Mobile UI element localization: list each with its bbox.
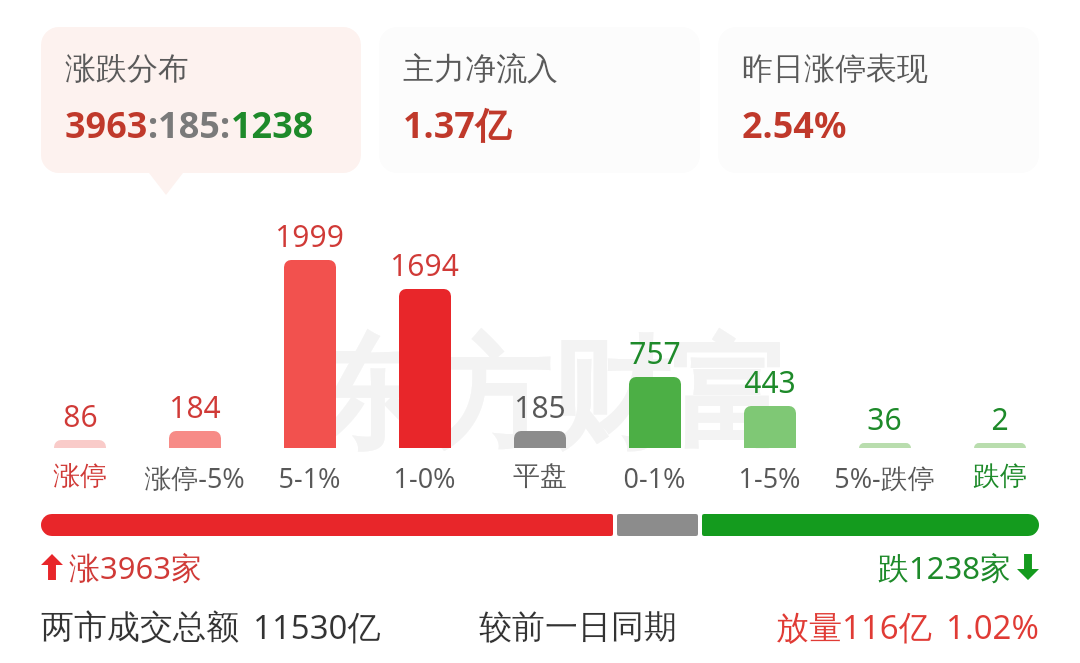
staticText: 涨跌分布 xyxy=(65,49,189,88)
staticText: 5-1% xyxy=(278,459,341,492)
other: Rising xyxy=(41,554,63,580)
staticText: :185: xyxy=(148,100,231,149)
button[interactable]: 2 xyxy=(942,212,1057,492)
staticText: 1999 xyxy=(275,215,344,256)
staticText: 3963 xyxy=(65,100,148,149)
button[interactable]: 185 xyxy=(482,212,597,492)
staticText: 757 xyxy=(629,332,681,373)
staticText: 跌停 xyxy=(973,459,1027,492)
staticText: 放量116亿 xyxy=(776,604,932,649)
staticText: 11530亿 xyxy=(253,604,381,649)
button[interactable]: 757 xyxy=(597,212,712,492)
staticText: 跌1238家 xyxy=(878,546,1011,588)
staticText: 主力净流入 xyxy=(403,49,558,88)
button[interactable]: 涨跌分布 xyxy=(41,27,361,173)
staticText: 1.02% xyxy=(946,604,1039,649)
staticText: 1238 xyxy=(231,100,314,149)
staticText: 平盘 xyxy=(513,459,567,492)
staticText: 1.37亿 xyxy=(403,100,511,149)
button[interactable]: 1999 xyxy=(252,212,367,492)
staticText: 36 xyxy=(867,398,902,439)
button[interactable]: 主力净流入 xyxy=(379,27,700,173)
button[interactable]: 86 xyxy=(23,212,137,492)
other: Falling xyxy=(1017,554,1039,580)
staticText: 5%-跌停 xyxy=(834,459,935,492)
staticText: 86 xyxy=(63,395,98,436)
staticText: 0-1% xyxy=(623,459,686,492)
staticText: 涨停 xyxy=(53,459,107,492)
staticText: 两市成交总额 xyxy=(41,606,239,648)
staticText: 涨停-5% xyxy=(144,459,245,492)
button[interactable]: 184 xyxy=(137,212,252,492)
staticText: 2 xyxy=(991,398,1009,439)
staticText: 184 xyxy=(169,386,221,427)
button[interactable]: 1694 xyxy=(367,212,482,492)
button[interactable]: 443 xyxy=(712,212,827,492)
staticText: 较前一日同期 xyxy=(479,606,677,648)
button[interactable]: 36 xyxy=(827,212,942,492)
staticText: 443 xyxy=(744,361,796,402)
staticText: 东方财富 xyxy=(310,320,790,471)
button[interactable]: 昨日涨停表现 xyxy=(718,27,1039,173)
staticText: 涨3963家 xyxy=(69,546,202,588)
staticText: 2.54% xyxy=(742,100,847,149)
staticText: 1694 xyxy=(390,244,459,285)
staticText: 1-5% xyxy=(738,459,801,492)
staticText: 昨日涨停表现 xyxy=(742,49,928,88)
staticText: 185 xyxy=(514,386,566,427)
staticText: 1-0% xyxy=(393,459,456,492)
